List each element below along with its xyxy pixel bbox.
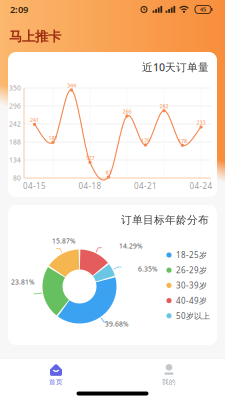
staticText: 14.29% bbox=[119, 242, 143, 250]
staticText: 296 bbox=[9, 102, 21, 110]
button[interactable]: 首页 bbox=[0, 358, 112, 400]
staticText: 近10天订单量 bbox=[142, 60, 209, 74]
staticText: 39.68% bbox=[105, 320, 129, 328]
staticText: 83 bbox=[105, 169, 111, 176]
staticText: 04-18 bbox=[78, 181, 101, 191]
staticText: 187 bbox=[48, 134, 57, 141]
staticText: 30-39岁 bbox=[176, 280, 207, 291]
button[interactable]: 我的 bbox=[112, 358, 224, 400]
staticText: 178 bbox=[178, 137, 187, 144]
staticText: 282 bbox=[159, 103, 168, 110]
staticText: 134 bbox=[9, 156, 21, 164]
staticText: 马上推卡 bbox=[9, 28, 61, 45]
staticText: 15.87% bbox=[52, 237, 76, 245]
staticText: 04-21 bbox=[134, 181, 157, 191]
staticText: 127 bbox=[85, 154, 94, 161]
staticText: 04-24 bbox=[189, 181, 212, 191]
staticText: 45 bbox=[200, 6, 206, 13]
staticText: 241 bbox=[30, 116, 39, 123]
staticText: 26-29岁 bbox=[176, 265, 207, 275]
staticText: 2:09 bbox=[10, 3, 28, 16]
staticText: 6.35% bbox=[138, 265, 158, 273]
staticText: 188 bbox=[9, 138, 21, 146]
staticText: 50岁以上 bbox=[176, 310, 210, 321]
staticText: 23.81% bbox=[11, 278, 35, 286]
staticText: 我的 bbox=[162, 378, 176, 386]
staticText: 80 bbox=[13, 174, 21, 182]
staticText: 179 bbox=[141, 137, 150, 144]
staticText: 订单目标年龄分布 bbox=[121, 213, 209, 226]
staticText: 233 bbox=[196, 119, 205, 126]
staticText: 18-25岁 bbox=[176, 250, 207, 260]
staticText: 350 bbox=[9, 84, 21, 92]
staticText: 242 bbox=[9, 120, 21, 128]
staticText: 344 bbox=[67, 82, 76, 89]
staticText: 266 bbox=[122, 108, 131, 115]
staticText: 首页 bbox=[49, 378, 63, 386]
staticText: 04-15 bbox=[23, 181, 46, 191]
staticText: 40-49岁 bbox=[176, 295, 207, 306]
